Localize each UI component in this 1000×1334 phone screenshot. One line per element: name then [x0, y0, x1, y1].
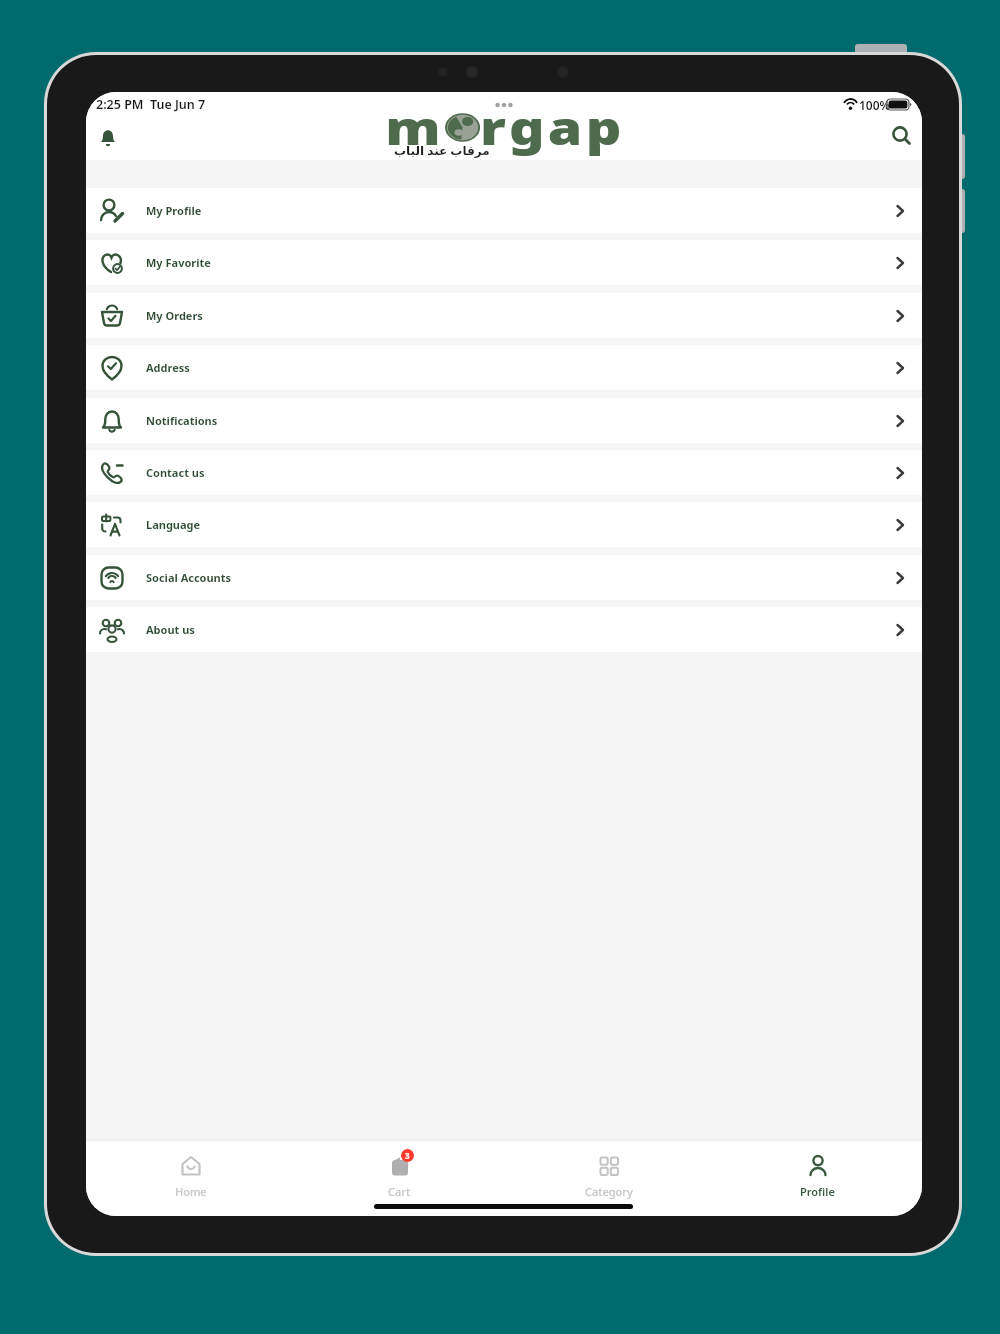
staticText: 2:25 PM Tue Jun 7 — [96, 96, 206, 113]
staticText: Cart — [388, 1184, 411, 1199]
staticText: My Profile — [146, 203, 202, 218]
staticText: m — [385, 97, 445, 158]
staticText: 100% — [859, 97, 891, 113]
staticText: Category — [585, 1184, 633, 1199]
button[interactable]: Address — [86, 345, 922, 390]
staticText: مرقاب عند الباب — [394, 142, 490, 158]
staticText: Contact us — [146, 465, 205, 480]
staticText: Address — [146, 360, 190, 375]
button[interactable]: Notifications — [86, 398, 922, 443]
button[interactable]: Category — [504, 1140, 713, 1216]
button[interactable]: Home — [86, 1140, 295, 1216]
staticText: Home — [175, 1184, 207, 1199]
staticText: My Favorite — [146, 255, 211, 270]
staticText: Social Accounts — [146, 570, 232, 585]
staticText: About us — [146, 622, 195, 637]
button[interactable]: About us — [86, 607, 922, 652]
staticText: rgap — [480, 97, 626, 158]
staticText: Profile — [800, 1184, 835, 1199]
staticText: 3 — [405, 1150, 410, 1161]
button[interactable]: My Orders — [86, 293, 922, 338]
button[interactable]: Social Accounts — [86, 555, 922, 600]
staticText: My Orders — [146, 308, 203, 323]
button[interactable]: Contact us — [86, 450, 922, 495]
button[interactable]: Profile — [713, 1140, 922, 1216]
button[interactable]: My Favorite — [86, 240, 922, 285]
button[interactable]: 3 — [295, 1140, 504, 1216]
button[interactable]: Language — [86, 502, 922, 547]
staticText: Language — [146, 517, 201, 532]
staticText: Notifications — [146, 413, 218, 428]
button[interactable]: My Profile — [86, 188, 922, 233]
